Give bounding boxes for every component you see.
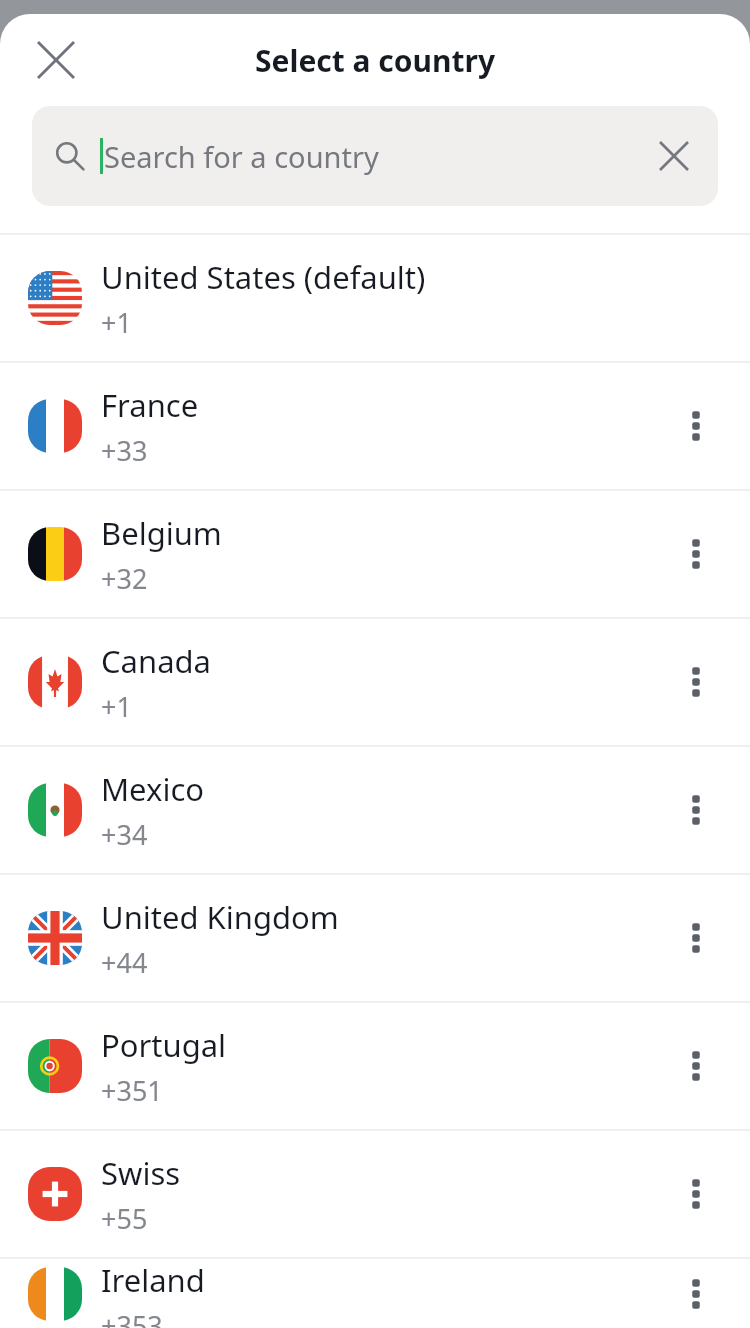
staticText: United States (default) (101, 256, 426, 298)
staticText: United Kingdom (101, 896, 339, 938)
staticText: +351 (101, 1072, 163, 1109)
staticText: +34 (101, 816, 148, 853)
staticText: Select a country (255, 40, 496, 81)
staticText: Ireland (101, 1259, 205, 1301)
button[interactable]: More options for France (668, 398, 724, 454)
button[interactable]: Canada (0, 619, 750, 745)
button[interactable]: More options for Belgium (668, 526, 724, 582)
staticText: +1 (101, 304, 132, 341)
staticText: Swiss (101, 1152, 181, 1194)
button[interactable]: Clear search (648, 130, 700, 182)
staticText: +55 (101, 1200, 148, 1237)
button[interactable]: France (0, 363, 750, 489)
button[interactable]: United States (default) (0, 235, 750, 361)
staticText: Belgium (101, 512, 222, 554)
other: Search (54, 140, 86, 172)
button[interactable]: United Kingdom (0, 875, 750, 1001)
staticText: +353 (101, 1307, 163, 1328)
staticText: Canada (101, 640, 211, 682)
staticText: France (101, 384, 199, 426)
button[interactable]: Mexico (0, 747, 750, 873)
button[interactable]: More options for Mexico (668, 782, 724, 838)
staticText: +32 (101, 560, 148, 597)
button[interactable]: More options for United Kingdom (668, 910, 724, 966)
button[interactable]: More options for Portugal (668, 1038, 724, 1094)
staticText: +1 (101, 688, 132, 725)
button[interactable]: More options for Canada (668, 654, 724, 710)
button[interactable]: Search (32, 106, 718, 206)
staticText: Search for a country (104, 137, 379, 176)
staticText: Mexico (101, 768, 205, 810)
button[interactable]: Belgium (0, 491, 750, 617)
button[interactable]: More options for Swiss (668, 1166, 724, 1222)
button[interactable]: Ireland (0, 1259, 750, 1328)
staticText: +33 (101, 432, 148, 469)
staticText: Portugal (101, 1024, 227, 1066)
button[interactable]: Close (26, 30, 86, 90)
staticText: +44 (101, 944, 148, 981)
button[interactable]: Portugal (0, 1003, 750, 1129)
button[interactable]: More options for Ireland (668, 1266, 724, 1322)
button[interactable]: Swiss (0, 1131, 750, 1257)
